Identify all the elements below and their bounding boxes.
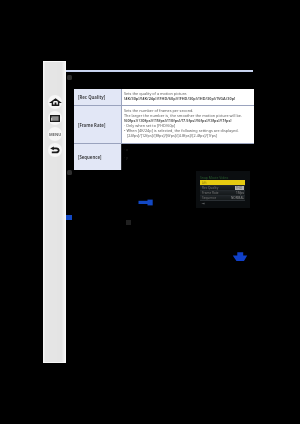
button[interactable]: Menu [48,127,62,141]
staticText: FHD [236,186,243,190]
staticText: The larger the number is, the smoother t… [124,113,242,118]
staticText: Lift [202,181,207,185]
staticText: Rec Quality [202,186,219,190]
button[interactable]: Contents [48,111,62,125]
staticText: Sets the quality of a motion picture. [124,91,188,96]
staticText: [Frame Rate] [78,122,106,128]
staticText: [24fps]/[12fps]/[8fps]/[6fps]/[4.8fps]/[… [124,133,218,138]
staticText: [Rec Quality] [78,94,106,100]
staticText: • When [4K/24p] is selected, the followi… [124,128,239,133]
button[interactable]: Back [48,143,62,157]
staticText: NORMAL [230,196,244,200]
staticText: · y [124,155,128,160]
staticText: Frame Rate [202,191,219,195]
staticText: 15fps [236,191,244,195]
staticText: · Only when set to [FHD/60p] [124,123,176,128]
staticText: · x [124,147,129,152]
staticText: MENU [49,132,62,137]
staticText: [60fps]/ [30fps]/[15fps]/[10fps]/[7.5fps… [124,118,232,123]
staticText: Sequence [202,196,217,200]
staticText: [Sequence] [78,154,102,160]
staticText: [4K/30p]/[4K/24p]/[FHD/60p]/[FHD/30p]/[H… [124,96,236,101]
staticText: Sets the number of frames per second. [124,108,194,113]
button[interactable]: Home [48,95,62,109]
staticText: Snap Movie Video [200,175,229,180]
